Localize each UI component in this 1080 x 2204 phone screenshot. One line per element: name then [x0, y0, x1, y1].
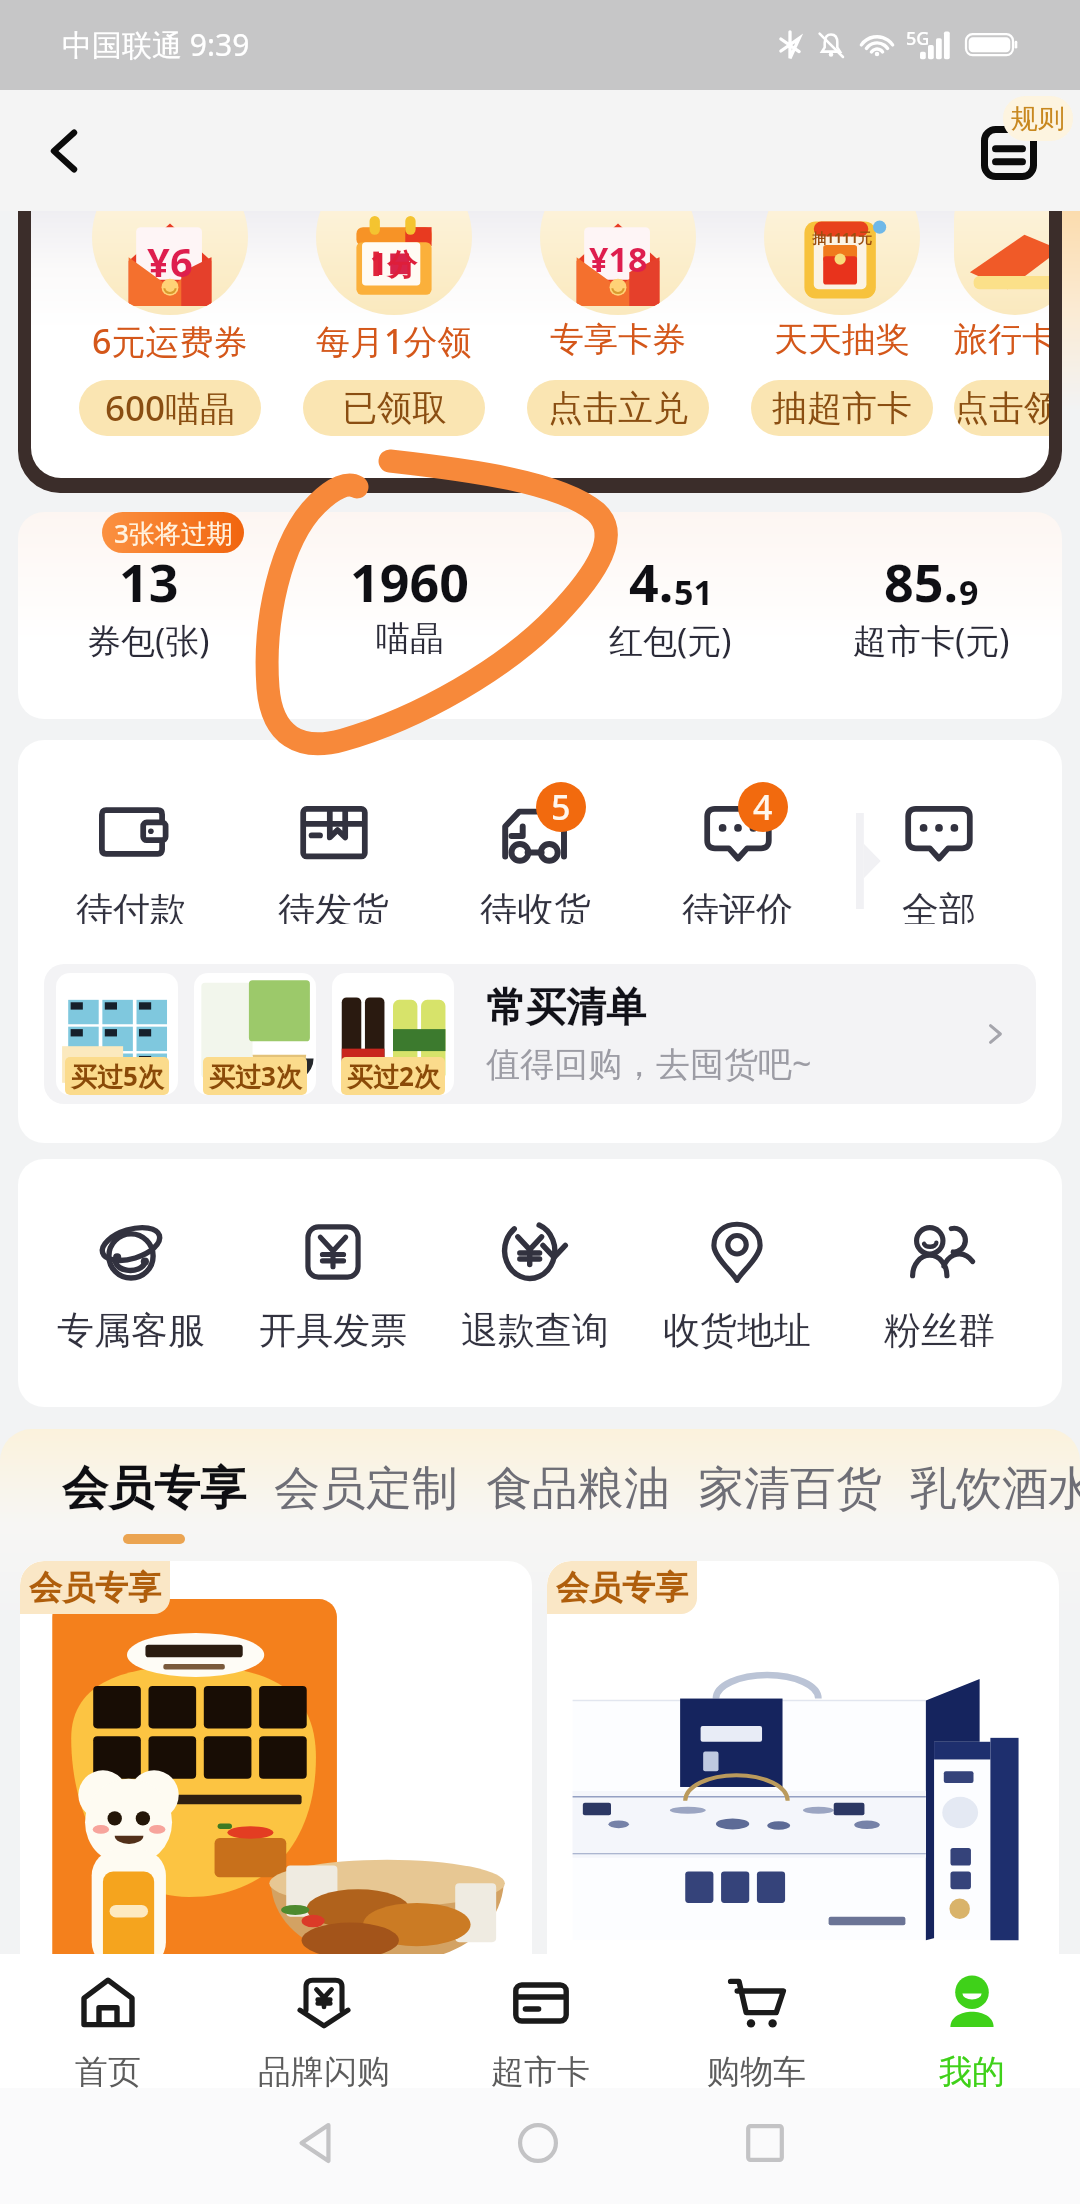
button[interactable]: 首页: [0, 1954, 216, 2088]
button[interactable]: 专属客服: [30, 1219, 232, 1354]
button[interactable]: 粉丝群: [838, 1219, 1040, 1354]
button[interactable]: Back: [255, 2088, 375, 2204]
staticText: 4: [753, 784, 773, 830]
button[interactable]: 4.: [540, 512, 801, 719]
button[interactable]: Back: [22, 109, 106, 193]
button[interactable]: 4: [636, 798, 838, 924]
staticText: 买过3次: [209, 1058, 302, 1094]
button[interactable]: 收货地址: [636, 1219, 838, 1354]
button[interactable]: 会员专享: [20, 1561, 532, 1954]
button[interactable]: 会员定制: [274, 1460, 458, 1544]
staticText: 抽1111元: [812, 228, 873, 247]
staticText: 开具发票: [259, 1307, 407, 1354]
staticText: 食品粮油: [486, 1460, 670, 1518]
staticText: 待付款: [76, 887, 187, 924]
button[interactable]: 食品粮油: [486, 1460, 670, 1544]
staticText: 超市卡(元): [853, 617, 1010, 663]
staticText: 待收货: [480, 887, 591, 924]
button[interactable]: Rules: [962, 106, 1056, 200]
staticText: 我的: [939, 2051, 1005, 2088]
staticText: 买过2次: [347, 1058, 440, 1094]
button[interactable]: 退款查询: [434, 1219, 636, 1354]
button[interactable]: Home: [478, 2088, 598, 2204]
button[interactable]: 超市卡: [432, 1954, 648, 2088]
staticText: 已领取: [342, 386, 447, 430]
staticText: 全部: [902, 887, 976, 924]
button[interactable]: 家清百货: [698, 1460, 882, 1544]
staticText: 3张将过期: [114, 515, 233, 551]
staticText: 9: [959, 569, 979, 615]
staticText: 券包(张): [87, 617, 210, 663]
button[interactable]: 5: [434, 798, 636, 924]
staticText: 点击领取: [954, 386, 1049, 430]
button[interactable]: 我的: [864, 1954, 1080, 2088]
button[interactable]: 品牌闪购: [216, 1954, 432, 2088]
button[interactable]: Recent apps: [705, 2088, 825, 2204]
staticText: 抽超市卡: [772, 386, 912, 430]
staticText: 专享卡券: [550, 318, 686, 361]
staticText: 购物车: [707, 2051, 806, 2088]
staticText: 超市卡: [491, 2051, 590, 2088]
button[interactable]: 1960: [279, 512, 540, 719]
staticText: 值得回购，去囤货吧~: [486, 1040, 812, 1086]
staticText: 600喵晶: [105, 384, 236, 432]
staticText: 首页: [75, 2051, 141, 2088]
button[interactable]: ¥18: [506, 211, 730, 478]
staticText: 51: [674, 569, 713, 615]
button[interactable]: 13: [18, 512, 279, 719]
staticText: 6元运费券: [92, 318, 248, 364]
staticText: 中国联通 9:39: [62, 24, 250, 65]
staticText: 退款查询: [461, 1307, 609, 1354]
staticText: 规则: [1011, 102, 1065, 136]
staticText: 乳饮酒水: [910, 1460, 1080, 1518]
button[interactable]: ¥6: [58, 211, 282, 478]
staticText: 天天抽奖: [774, 318, 910, 361]
staticText: 会员专享: [556, 1567, 688, 1609]
staticText: 会员定制: [274, 1460, 458, 1518]
button[interactable]: 抽1111元: [730, 211, 954, 478]
button[interactable]: 1分: [282, 211, 506, 478]
staticText: 每月1分领: [316, 318, 472, 364]
button[interactable]: 会员专享: [62, 1460, 246, 1544]
button[interactable]: 购物车: [648, 1954, 864, 2088]
staticText: ¥18: [589, 236, 648, 282]
staticText: 旅行卡券: [954, 318, 1049, 361]
staticText: 13: [119, 546, 179, 617]
staticText: 家清百货: [698, 1460, 882, 1518]
staticText: 专属客服: [57, 1307, 205, 1354]
staticText: 点击立兑: [548, 386, 688, 430]
button[interactable]: 会员专享: [547, 1561, 1059, 1954]
staticText: 会员专享: [29, 1567, 161, 1609]
staticText: 5G: [906, 26, 930, 51]
staticText: 1960: [350, 546, 469, 617]
staticText: 会员专享: [62, 1460, 246, 1518]
staticText: 喵晶: [376, 617, 444, 660]
staticText: 5: [551, 784, 571, 830]
staticText: ¥6: [147, 234, 193, 288]
staticText: 红包(元): [609, 617, 732, 663]
button[interactable]: 待付款: [30, 798, 232, 924]
staticText: 常买清单: [486, 982, 646, 1032]
staticText: 品牌闪购: [258, 2051, 390, 2088]
staticText: 85.: [884, 546, 959, 617]
button[interactable]: 旅行卡券: [954, 211, 1049, 478]
button[interactable]: 待发货: [232, 798, 434, 924]
staticText: 待发货: [278, 887, 389, 924]
button[interactable]: 乳饮酒水: [910, 1460, 1080, 1544]
button[interactable]: 买过5次: [44, 964, 1036, 1104]
staticText: 1分: [370, 243, 418, 284]
button[interactable]: 开具发票: [232, 1219, 434, 1354]
button[interactable]: 全部: [838, 798, 1040, 924]
staticText: 收货地址: [663, 1307, 811, 1354]
staticText: 待评价: [682, 887, 793, 924]
staticText: 4.: [629, 546, 674, 617]
staticText: 买过5次: [71, 1058, 164, 1094]
staticText: 粉丝群: [884, 1307, 995, 1354]
button[interactable]: 85.: [801, 512, 1062, 719]
